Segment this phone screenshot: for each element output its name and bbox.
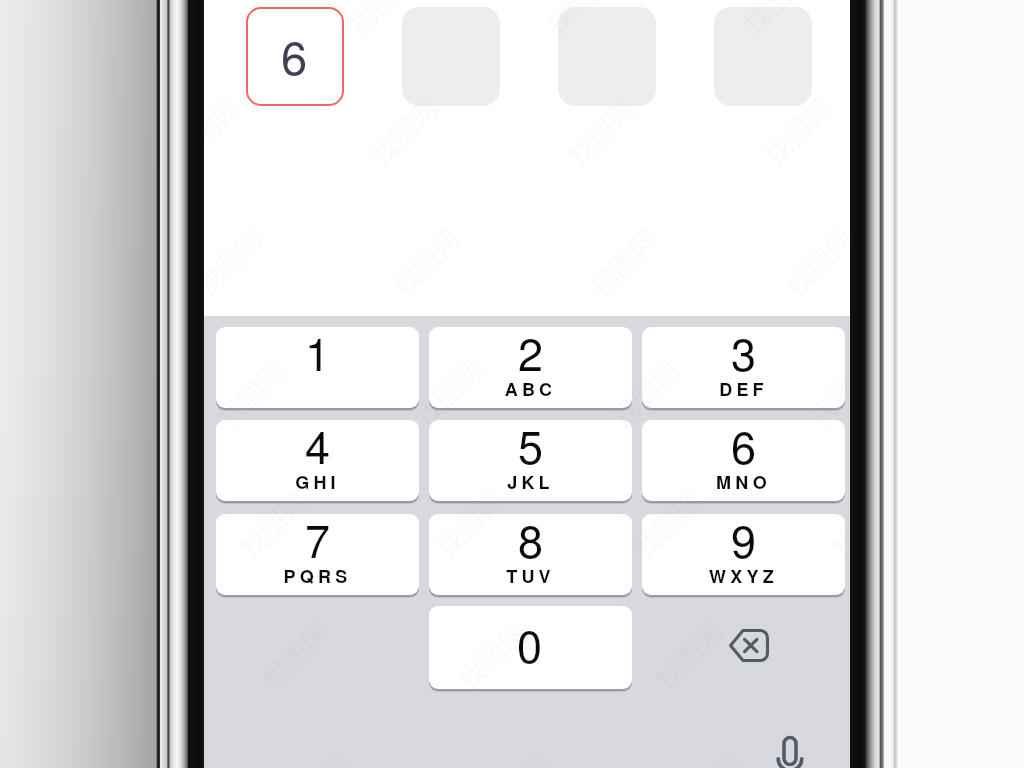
staticText: 找图网 <box>625 481 709 565</box>
staticText: 找图网 <box>204 88 249 172</box>
staticText: 找图网 <box>603 350 687 434</box>
staticText: 找图网 <box>756 88 840 172</box>
button[interactable]: 6 <box>246 7 344 106</box>
staticText: TUV <box>429 563 632 589</box>
staticText: 9 <box>642 514 845 570</box>
button[interactable]: 5 <box>429 420 632 501</box>
staticText: 2 <box>429 327 632 383</box>
staticText: 找图网 <box>800 350 850 434</box>
staticText: 找图网 <box>647 612 731 696</box>
button[interactable]: Voice input <box>760 730 820 768</box>
button[interactable]: 3 <box>642 327 845 408</box>
button[interactable]: 2 <box>429 327 632 408</box>
staticText: DEF <box>642 376 845 402</box>
staticText: 找图网 <box>209 350 293 434</box>
staticText: 找图网 <box>428 481 512 565</box>
staticText: 6 <box>642 420 845 476</box>
staticText: 6 <box>281 21 308 88</box>
staticText: 找图网 <box>406 350 490 434</box>
staticText: GHI <box>216 469 419 495</box>
staticText: 8 <box>429 514 632 570</box>
staticText: 找图网 <box>822 481 850 565</box>
button[interactable]: 7 <box>216 514 419 595</box>
staticText: 7 <box>216 514 419 570</box>
button[interactable]: Backspace <box>704 605 792 685</box>
staticText: 3 <box>642 327 845 383</box>
staticText: 0 <box>429 611 631 675</box>
staticText: WXYZ <box>642 563 845 589</box>
button[interactable]: 1 <box>216 327 419 408</box>
button[interactable]: 4 <box>216 420 419 501</box>
staticText: 找图网 <box>537 0 621 41</box>
staticText: MNO <box>642 469 845 495</box>
staticText: 找图网 <box>231 481 315 565</box>
staticText: 找图网 <box>559 88 643 172</box>
button[interactable]: 9 <box>642 514 845 595</box>
button[interactable]: 6 <box>642 420 845 501</box>
staticText: ABC <box>429 376 632 402</box>
staticText: 找图网 <box>450 612 534 696</box>
button[interactable]: 0 <box>429 606 632 689</box>
staticText: 找图网 <box>362 88 446 172</box>
staticText: 5 <box>429 420 632 476</box>
staticText: JKL <box>429 469 632 495</box>
button[interactable]: 8 <box>429 514 632 595</box>
staticText: 4 <box>216 420 419 476</box>
staticText: 找图网 <box>340 0 424 41</box>
staticText: 1 <box>216 327 419 383</box>
staticText: 找图网 <box>734 0 818 41</box>
staticText: PQRS <box>216 563 419 589</box>
